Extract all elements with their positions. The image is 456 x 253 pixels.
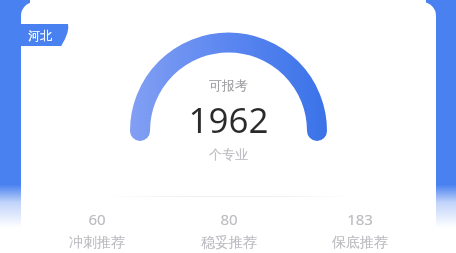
button[interactable]: 河北 [21,24,70,46]
staticText: 80 [220,209,238,229]
button[interactable]: 60 [41,209,153,252]
staticText: 河北 [28,28,52,43]
staticText: 冲刺推荐 [69,234,125,252]
staticText: 1962 [188,96,269,144]
staticText: 保底推荐 [332,234,388,252]
button[interactable]: 183 [304,209,416,252]
staticText: 稳妥推荐 [201,234,257,252]
button[interactable]: 80 [173,209,285,252]
staticText: 183 [347,209,373,229]
staticText: 可报考 [209,77,248,93]
staticText: 60 [88,209,106,229]
staticText: 个专业 [209,146,248,162]
